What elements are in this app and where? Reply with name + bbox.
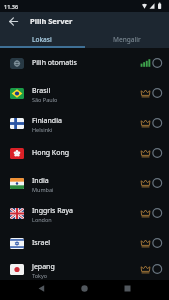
button[interactable] xyxy=(81,285,88,292)
staticText: Pilih otomatis xyxy=(32,58,77,68)
staticText: Tokyo xyxy=(32,272,48,279)
button[interactable] xyxy=(152,264,163,275)
staticText: Inggris Raya xyxy=(32,206,73,216)
button[interactable]: Mengalir xyxy=(84,30,169,48)
staticText: Mumbai xyxy=(32,186,54,193)
button[interactable]: Lokasi xyxy=(0,30,84,48)
button[interactable]: Jepang xyxy=(0,258,169,280)
button[interactable] xyxy=(124,285,131,292)
button[interactable]: Israel xyxy=(0,228,169,258)
button[interactable] xyxy=(152,118,163,129)
button[interactable] xyxy=(0,12,26,30)
staticText: Finlandia xyxy=(32,116,62,126)
button[interactable] xyxy=(152,58,163,69)
staticText: Mengalir xyxy=(113,35,141,44)
button[interactable]: Brasil xyxy=(0,78,169,108)
staticText: India xyxy=(32,176,49,186)
staticText: London xyxy=(32,216,52,223)
staticText: Brasil xyxy=(32,86,51,96)
button[interactable]: India xyxy=(0,168,169,198)
button[interactable]: Pilih otomatis xyxy=(0,48,169,78)
button[interactable]: Inggris Raya xyxy=(0,198,169,228)
staticText: Lokasi xyxy=(32,35,52,44)
button[interactable] xyxy=(38,285,45,292)
button[interactable] xyxy=(152,178,163,189)
staticText: Israel xyxy=(32,238,51,248)
staticText: Pilih Server xyxy=(30,16,73,26)
button[interactable] xyxy=(152,148,163,159)
button[interactable]: Finlandia xyxy=(0,108,169,138)
button[interactable] xyxy=(152,88,163,99)
staticText: Helsinki xyxy=(32,126,53,133)
staticText: Jepang xyxy=(32,262,55,272)
button[interactable]: Hong Kong xyxy=(0,138,169,168)
staticText: São Paulo xyxy=(32,96,58,103)
button[interactable] xyxy=(152,238,163,249)
button[interactable] xyxy=(152,208,163,219)
staticText: 11.36 xyxy=(4,3,19,10)
staticText: Hong Kong xyxy=(32,148,70,158)
